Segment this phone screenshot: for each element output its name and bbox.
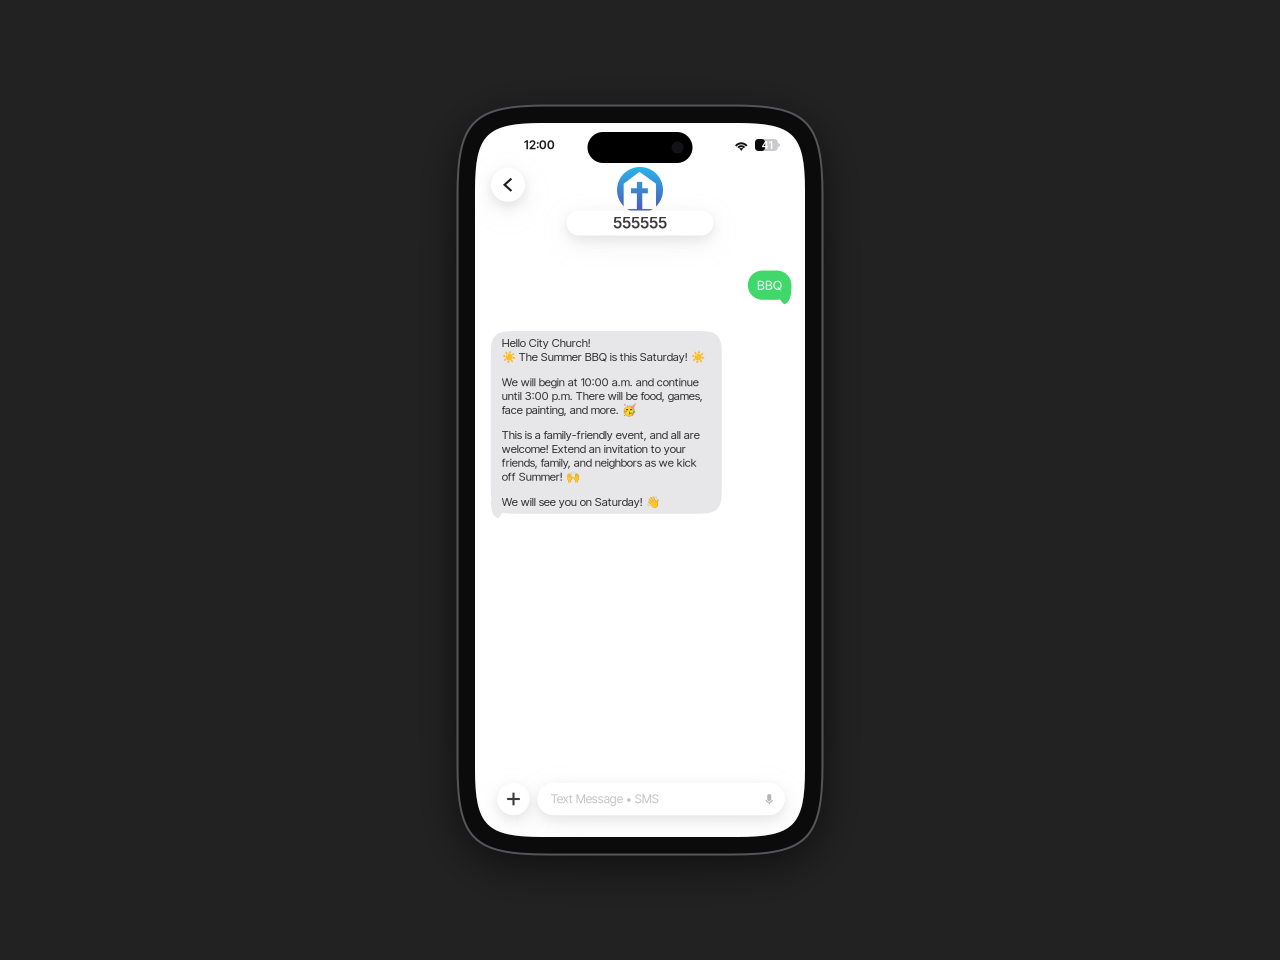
staticText: BBQ — [757, 277, 782, 293]
staticText: 41 — [762, 138, 773, 151]
staticText: We will begin at 10:00 a.m. and continue… — [502, 375, 703, 417]
staticText: Text Message • SMS — [551, 792, 659, 806]
staticText: We will see you on Saturday! 👋 — [502, 495, 660, 509]
button[interactable]: Back — [491, 168, 525, 202]
button[interactable]: Attach — [497, 783, 530, 815]
button[interactable]: Text Message • SMS — [537, 783, 785, 815]
staticText: 12:00 — [524, 138, 555, 152]
staticText: 555555 — [613, 214, 667, 232]
staticText: This is a family-friendly event, and all… — [502, 428, 700, 483]
staticText: ☀️ The Summer BBQ is this Saturday! ☀️ — [502, 350, 705, 364]
staticText: Hello City Church! — [502, 336, 591, 350]
